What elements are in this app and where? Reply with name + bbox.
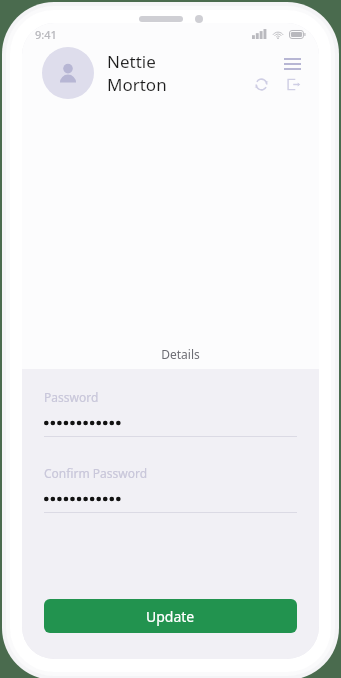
button[interactable]: Menu xyxy=(279,51,305,77)
staticText: Details xyxy=(161,346,200,362)
staticText: Nettie xyxy=(107,50,156,73)
button[interactable]: Log out xyxy=(281,72,305,96)
button[interactable]: Update xyxy=(44,599,297,633)
button[interactable]: Details xyxy=(42,341,319,369)
staticText: 9:41 xyxy=(35,27,57,42)
staticText: Update xyxy=(146,607,195,626)
staticText: Password xyxy=(44,389,99,405)
staticText: Confirm Password xyxy=(44,465,148,481)
staticText: Morton xyxy=(107,73,167,96)
button[interactable]: Refresh xyxy=(249,72,273,96)
